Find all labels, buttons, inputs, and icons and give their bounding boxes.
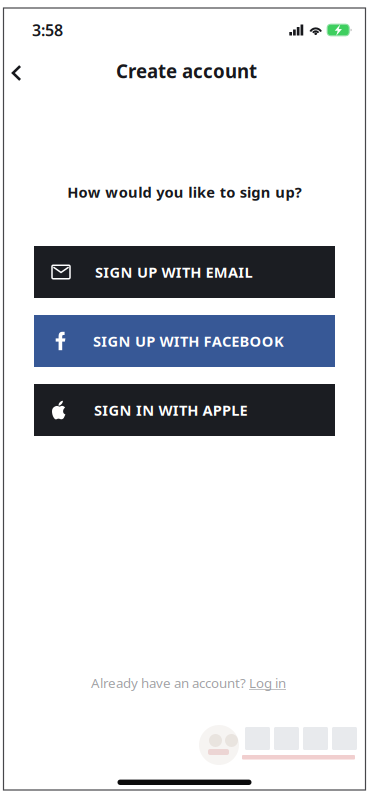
staticText: SIGN IN WITH APPLE (94, 400, 247, 420)
button[interactable]: Back (0, 51, 37, 91)
button[interactable]: SIGN IN WITH APPLE (34, 384, 335, 436)
staticText: Already have an account? (91, 674, 249, 692)
staticText: Log in (249, 674, 286, 692)
staticText: How would you like to sign up? (67, 182, 302, 202)
staticText: Create account (116, 59, 257, 83)
button[interactable]: SIGN UP WITH FACEBOOK (34, 315, 335, 367)
button[interactable]: SIGN UP WITH EMAIL (34, 246, 335, 298)
staticText: SIGN UP WITH EMAIL (95, 262, 252, 282)
button[interactable]: Already have an account? (65, 665, 304, 701)
staticText: 3:58 (32, 19, 63, 41)
staticText: SIGN UP WITH FACEBOOK (93, 331, 284, 351)
